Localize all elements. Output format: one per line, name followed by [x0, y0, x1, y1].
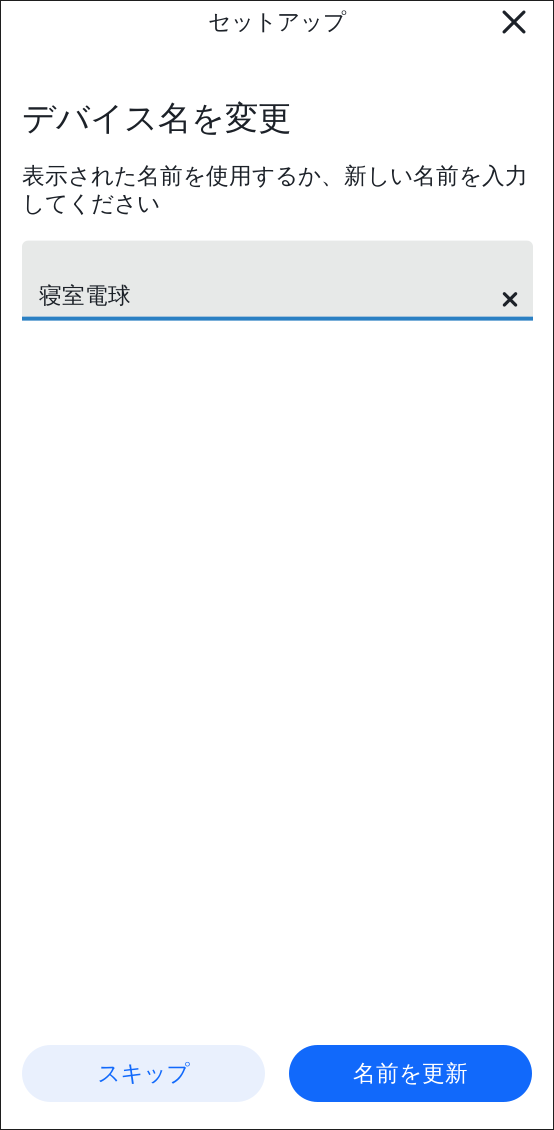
staticText: 名前を更新 [353, 1060, 468, 1087]
staticText: デバイス名を変更 [22, 98, 291, 139]
button[interactable]: 名前を更新 [289, 1045, 532, 1102]
button[interactable]: 消去 [494, 275, 526, 317]
button[interactable]: 寝室電球 [22, 241, 494, 317]
staticText: 表示された名前を使用するか、新しい名前を入力してください [22, 162, 528, 218]
button[interactable]: スキップ [22, 1045, 265, 1102]
staticText: 寝室電球 [39, 282, 131, 310]
staticText: セットアップ [208, 8, 346, 36]
staticText: スキップ [97, 1060, 189, 1087]
button[interactable]: 閉じる [492, 0, 536, 44]
